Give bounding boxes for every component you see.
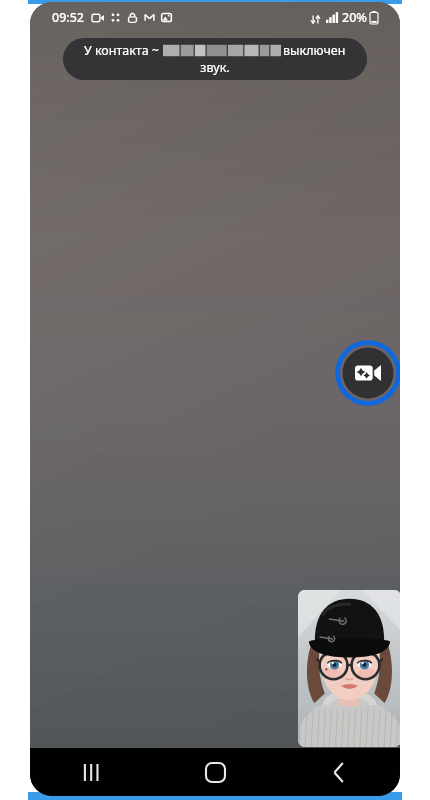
staticText: звук. [200, 59, 230, 76]
button[interactable] [298, 590, 400, 747]
button[interactable]: Home [154, 748, 277, 796]
staticText: 09:52 [52, 9, 85, 26]
button[interactable]: У контакта ~ [63, 38, 367, 80]
staticText: выключен [283, 42, 346, 59]
button[interactable]: Back [277, 748, 400, 796]
staticText: У контакта ~ [84, 42, 160, 59]
staticText: 20% [342, 9, 367, 26]
button[interactable]: Recent apps [30, 748, 154, 796]
button[interactable]: Video effects [335, 340, 400, 406]
